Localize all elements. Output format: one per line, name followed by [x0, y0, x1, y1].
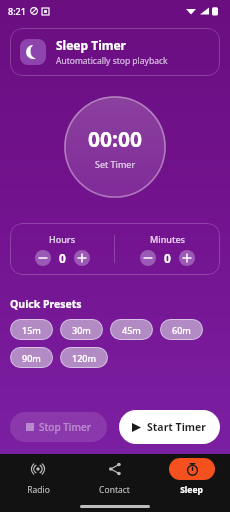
staticText: 45m	[122, 324, 141, 336]
button[interactable]: 15m	[10, 319, 53, 340]
button[interactable]: Contact	[76, 454, 153, 500]
staticText: 120m	[72, 352, 96, 364]
staticText: 8:21	[8, 5, 26, 17]
button[interactable]: 45m	[110, 319, 153, 340]
button[interactable]: Increase	[179, 250, 195, 266]
staticText: 15m	[22, 324, 41, 336]
staticText: Hours	[49, 233, 76, 245]
staticText: 60m	[172, 324, 191, 336]
staticText: Stop Timer	[39, 420, 91, 434]
button[interactable]: Decrease	[35, 250, 51, 266]
staticText: Contact	[99, 484, 130, 496]
staticText: Automatically stop playback	[56, 55, 168, 67]
button[interactable]: Decrease	[140, 250, 156, 266]
staticText: Sleep Timer	[56, 37, 126, 53]
staticText: Sleep	[180, 484, 203, 496]
button[interactable]: 30m	[60, 319, 103, 340]
button[interactable]: Sleep	[153, 454, 230, 500]
staticText: 0	[164, 250, 171, 266]
button[interactable]: Stop Timer	[10, 412, 107, 442]
staticText: Minutes	[150, 233, 185, 245]
staticText: Quick Presets	[10, 297, 82, 311]
button[interactable]: 60m	[160, 319, 203, 340]
button[interactable]: 120m	[60, 347, 108, 368]
staticText: Radio	[27, 484, 50, 496]
staticText: 30m	[72, 324, 91, 336]
staticText: Set Timer	[95, 158, 136, 170]
staticText: 90m	[22, 352, 41, 364]
button[interactable]: 90m	[10, 347, 53, 368]
button[interactable]: Start Timer	[119, 410, 220, 444]
staticText: Start Timer	[147, 420, 207, 434]
staticText: 0	[59, 250, 66, 266]
button[interactable]: Increase	[74, 250, 90, 266]
button[interactable]: Sleep Timer	[10, 28, 220, 76]
staticText: 00:00	[88, 125, 142, 154]
button[interactable]: Radio	[0, 454, 76, 500]
